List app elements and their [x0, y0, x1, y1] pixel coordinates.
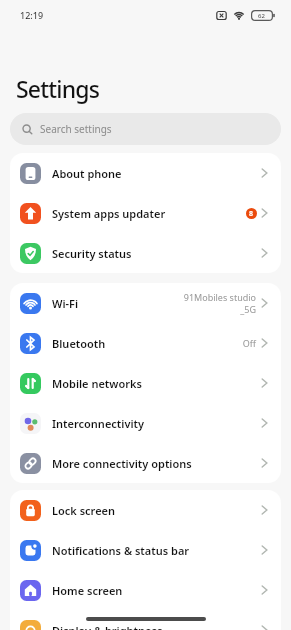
staticText: More connectivity options — [52, 456, 192, 471]
button[interactable]: System apps updater — [10, 193, 281, 233]
staticText: _5G — [240, 303, 256, 315]
staticText: 62 — [258, 12, 265, 20]
button[interactable]: About phone — [10, 153, 281, 193]
staticText: Wi-Fi — [52, 296, 79, 311]
button[interactable]: Display & brightness — [10, 610, 281, 630]
button[interactable]: Interconnectivity — [10, 403, 281, 443]
button[interactable]: Lock screen — [10, 490, 281, 530]
staticText: Home screen — [52, 583, 123, 598]
staticText: Settings — [16, 73, 100, 104]
staticText: Off — [242, 337, 256, 349]
button[interactable]: Security status — [10, 233, 281, 273]
button[interactable]: Search settings — [10, 113, 281, 145]
button[interactable]: Wi-Fi — [10, 283, 281, 323]
staticText: Interconnectivity — [52, 416, 145, 431]
button[interactable]: Notifications & status bar — [10, 530, 281, 570]
staticText: Notifications & status bar — [52, 543, 190, 558]
staticText: Mobile networks — [52, 376, 142, 391]
button[interactable]: Bluetooth — [10, 323, 281, 363]
button[interactable]: Home screen — [10, 570, 281, 610]
staticText: Lock screen — [52, 503, 116, 518]
staticText: 12:19 — [20, 9, 44, 21]
staticText: Security status — [52, 246, 132, 261]
button[interactable]: More connectivity options — [10, 443, 281, 483]
staticText: Display & brightness — [52, 623, 163, 630]
staticText: Search settings — [40, 122, 112, 136]
staticText: About phone — [52, 166, 122, 181]
button[interactable]: Mobile networks — [10, 363, 281, 403]
staticText: 8 — [249, 209, 254, 219]
staticText: System apps updater — [52, 206, 166, 221]
staticText: 91Mobiles studio — [183, 291, 256, 303]
staticText: Bluetooth — [52, 336, 106, 351]
